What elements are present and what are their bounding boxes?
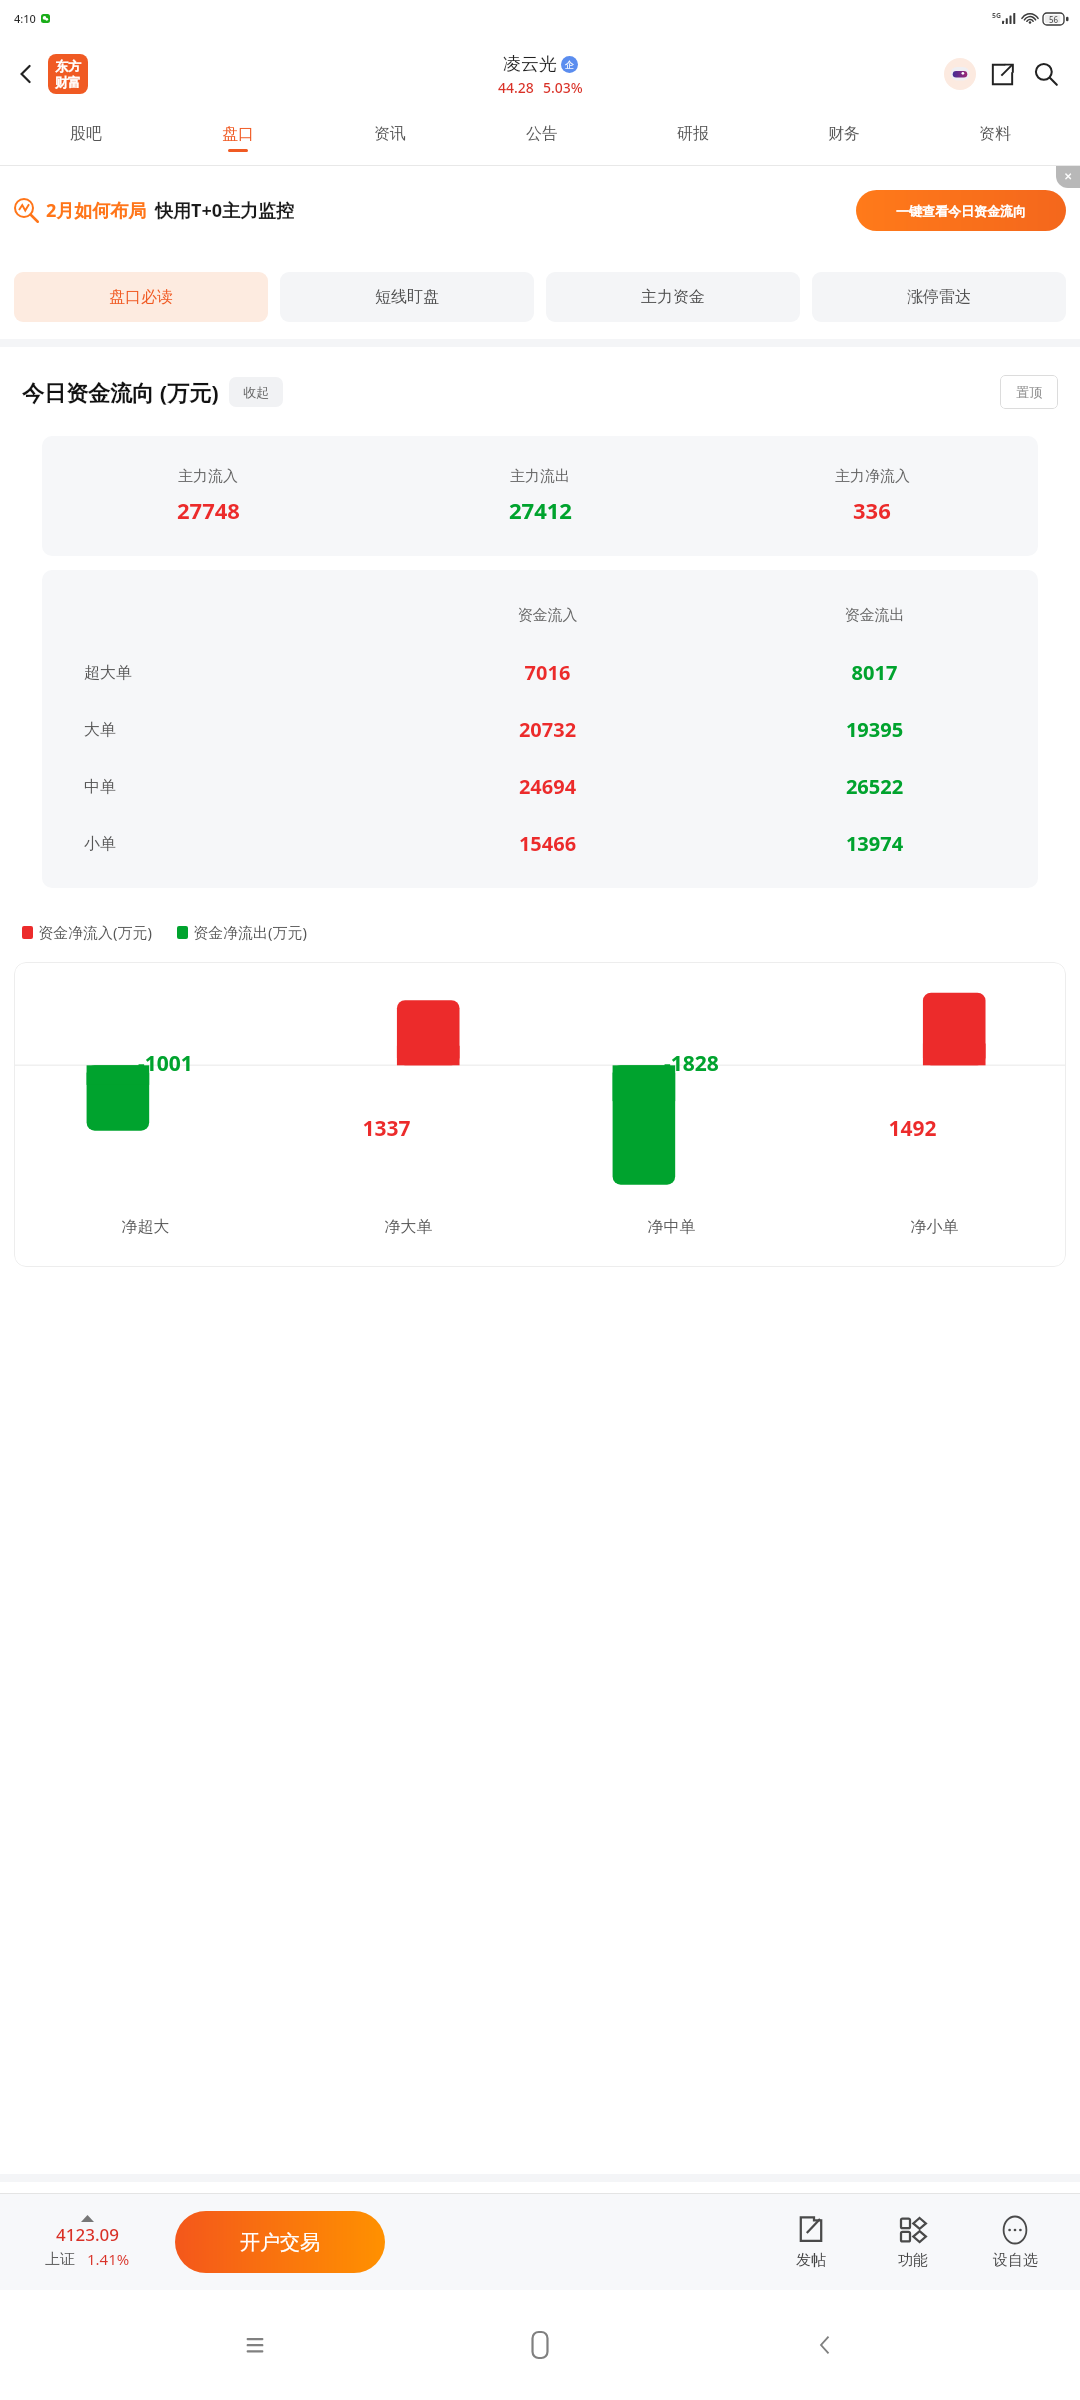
staticText: 大单 (84, 720, 116, 740)
button[interactable]: 中单 (42, 758, 1038, 815)
button[interactable]: 盘口 (162, 110, 314, 165)
button[interactable]: Share (980, 52, 1024, 96)
staticText: 1.41% (87, 2249, 130, 2269)
staticText: 功能 (898, 2251, 928, 2270)
staticText: 中单 (84, 777, 116, 797)
button[interactable]: 收起 (229, 377, 283, 407)
button[interactable]: Recents (225, 2315, 285, 2375)
staticText: 主力净流入 (835, 467, 910, 486)
button[interactable]: 研报 (617, 110, 768, 165)
staticText: 27412 (509, 495, 572, 525)
button[interactable]: 4123.09 (0, 2215, 175, 2269)
staticText: 超大单 (84, 663, 132, 683)
staticText: 企 (565, 59, 574, 70)
button[interactable]: Close (1056, 166, 1080, 188)
button[interactable]: 设自选 (964, 2215, 1066, 2270)
staticText: 短线盯盘 (375, 287, 439, 307)
button[interactable]: Home (510, 2315, 570, 2375)
staticText: 4123.09 (56, 2223, 119, 2246)
staticText: 15466 (384, 830, 711, 857)
staticText: 1492 (888, 1114, 937, 1143)
button[interactable]: 股吧 (10, 110, 162, 165)
staticText: 336 (853, 495, 891, 525)
staticText: 公告 (526, 124, 558, 144)
staticText: 财务 (828, 124, 860, 144)
staticText: 研报 (677, 124, 709, 144)
staticText: 东方 (55, 58, 81, 74)
staticText: 20732 (384, 716, 711, 743)
staticText: 净大单 (277, 1217, 540, 1237)
button[interactable]: 功能 (862, 2215, 964, 2270)
staticText: 凌云光 (503, 53, 557, 76)
staticText: 5.03% (543, 78, 583, 97)
button[interactable]: 盘口必读 (14, 272, 268, 322)
button[interactable]: 开户交易 (175, 2211, 385, 2273)
staticText: 主力流出 (510, 467, 570, 486)
staticText: 24694 (384, 773, 711, 800)
staticText: 资金净流入(万元) (38, 922, 153, 942)
button[interactable]: -1001 (14, 962, 1066, 1267)
staticText: 1337 (362, 1114, 411, 1143)
staticText: 27748 (177, 495, 240, 525)
staticText: 资金净流出(万元) (193, 922, 308, 942)
button[interactable]: 公告 (466, 110, 617, 165)
staticText: 财富 (55, 74, 81, 90)
staticText: 5G (992, 11, 1002, 21)
staticText: 涨停雷达 (907, 287, 971, 307)
staticText: 7016 (384, 659, 711, 686)
staticText: 19395 (711, 716, 1038, 743)
staticText: 一键查看今日资金流向 (896, 203, 1026, 219)
button[interactable]: 财务 (768, 110, 919, 165)
staticText: -1001 (138, 1049, 193, 1078)
staticText: 8017 (711, 659, 1038, 686)
button[interactable]: Back (795, 2315, 855, 2375)
staticText: 4:10 (14, 11, 36, 26)
button[interactable]: 置顶 (1000, 375, 1058, 409)
button[interactable]: 东方财富 (48, 54, 88, 94)
button[interactable]: 一键查看今日资金流向 (856, 190, 1066, 231)
staticText: ✕ (1064, 171, 1073, 183)
staticText: 净中单 (540, 1217, 803, 1237)
staticText: 快用T+0主力监控 (155, 198, 294, 223)
staticText: 置顶 (1016, 384, 1042, 400)
button[interactable]: 主力流入 (42, 436, 1038, 556)
staticText: 44.28 (498, 78, 534, 97)
staticText: 资料 (979, 124, 1011, 144)
staticText: 资金流入 (384, 606, 711, 625)
staticText: 盘口 (222, 124, 254, 144)
button[interactable]: Search (1024, 52, 1068, 96)
staticText: 56 (1049, 14, 1059, 25)
button[interactable]: Assistant (940, 54, 980, 94)
staticText: 26522 (711, 773, 1038, 800)
staticText: 今日资金流向 (万元) (22, 377, 219, 407)
button[interactable]: 大单 (42, 701, 1038, 758)
staticText: 开户交易 (240, 2230, 320, 2255)
button[interactable]: 资讯 (314, 110, 466, 165)
staticText: 2月如何布局 (46, 198, 147, 223)
button[interactable]: 短线盯盘 (280, 272, 534, 322)
staticText: 小单 (84, 834, 116, 854)
staticText: 13974 (711, 830, 1038, 857)
button[interactable]: 小单 (42, 815, 1038, 872)
staticText: 设自选 (993, 2251, 1038, 2270)
staticText: 主力资金 (641, 287, 705, 307)
button[interactable]: 涨停雷达 (812, 272, 1066, 322)
staticText: 净小单 (803, 1217, 1066, 1237)
staticText: 主力流入 (178, 467, 238, 486)
staticText: 盘口必读 (109, 287, 173, 307)
staticText: 资讯 (374, 124, 406, 144)
staticText: 净超大 (14, 1217, 277, 1237)
staticText: 资金流出 (711, 606, 1038, 625)
staticText: 收起 (243, 384, 269, 400)
button[interactable]: 超大单 (42, 644, 1038, 701)
button[interactable]: 发帖 (760, 2215, 862, 2270)
button[interactable]: Back (6, 54, 46, 94)
button[interactable]: 主力资金 (546, 272, 800, 322)
staticText: 发帖 (796, 2251, 826, 2270)
staticText: 上证 (45, 2250, 75, 2269)
staticText: 股吧 (70, 124, 102, 144)
staticText: -1828 (664, 1049, 719, 1078)
button[interactable]: 资料 (919, 110, 1070, 165)
